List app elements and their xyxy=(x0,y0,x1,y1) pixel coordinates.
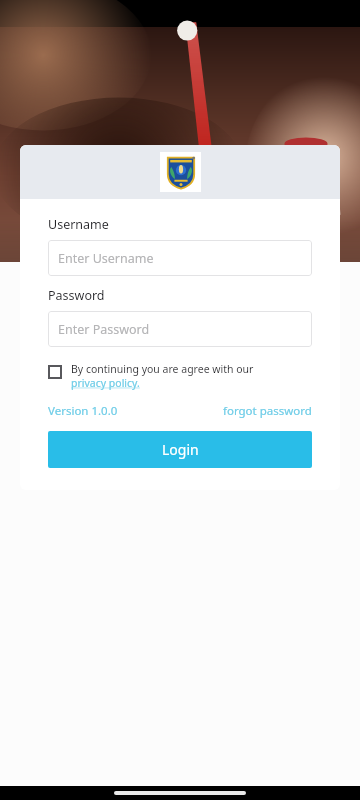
button[interactable]: forgot password xyxy=(223,403,312,419)
button[interactable]: Login xyxy=(48,431,312,468)
other: Agree to privacy policy xyxy=(48,365,62,379)
staticText: Username xyxy=(48,216,109,233)
button[interactable]: privacy policy. xyxy=(71,376,140,390)
staticText: Enter Username xyxy=(58,250,154,267)
staticText: Password xyxy=(48,287,105,304)
staticText: Enter Password xyxy=(58,321,150,338)
button[interactable]: Enter Username xyxy=(48,240,312,276)
button[interactable]: Agree to privacy policy xyxy=(48,362,312,390)
button[interactable]: Enter Password xyxy=(48,311,312,347)
button[interactable]: Version 1.0.0 xyxy=(48,403,118,419)
staticText: Login xyxy=(162,440,199,459)
staticText: By continuing you are agree with our xyxy=(71,362,254,376)
